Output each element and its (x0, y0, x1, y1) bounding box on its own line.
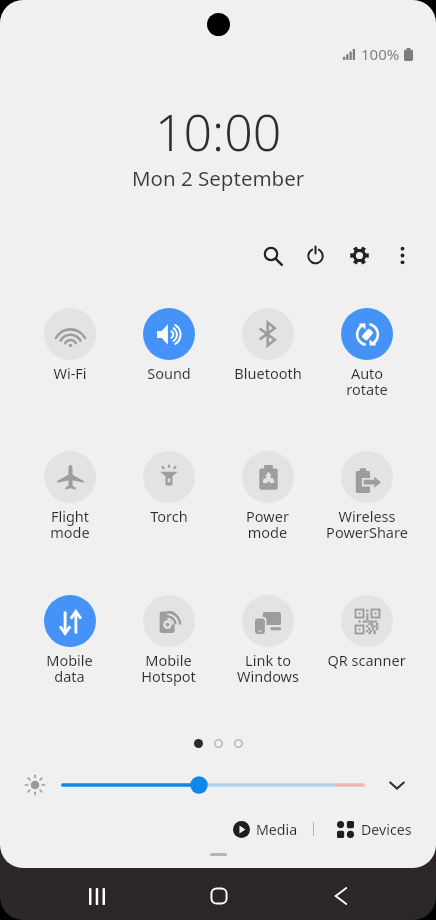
staticText: 100% (361, 44, 400, 64)
staticText: Wireless PowerShare (326, 506, 408, 543)
button[interactable]: Settings (337, 233, 382, 278)
button[interactable]: Wi-Fi (20, 308, 119, 383)
button[interactable]: Recents (75, 874, 119, 918)
staticText: Mobile Hotspot (141, 650, 196, 687)
staticText: Flight mode (50, 506, 90, 543)
button[interactable]: Auto rotate (317, 308, 416, 400)
staticText: Torch (150, 506, 188, 526)
button[interactable]: Torch (119, 451, 218, 526)
button[interactable]: QR scanner (317, 595, 416, 670)
staticText: Devices (361, 820, 412, 839)
button[interactable]: Power (293, 233, 338, 278)
button[interactable]: Expand brightness (381, 770, 413, 800)
staticText: Sound (147, 363, 191, 383)
button[interactable]: Power mode (218, 451, 317, 543)
button[interactable]: Sound (119, 308, 218, 383)
staticText: Wi-Fi (53, 363, 87, 383)
button[interactable]: Home (197, 874, 241, 918)
staticText: Power mode (246, 506, 289, 543)
button[interactable]: Wireless PowerShare (317, 451, 416, 543)
staticText: 10:00 (155, 98, 282, 162)
staticText: Media (256, 820, 298, 839)
staticText: Link to Windows (237, 650, 299, 687)
staticText: QR scanner (327, 650, 406, 670)
button[interactable]: Media (233, 816, 298, 842)
button[interactable]: Brightness (61, 774, 365, 796)
staticText: Mobile data (46, 650, 93, 687)
staticText: Bluetooth (234, 363, 302, 383)
button[interactable]: Link to Windows (218, 595, 317, 687)
button[interactable]: Devices (337, 816, 412, 842)
button[interactable]: Back (319, 874, 363, 918)
button[interactable]: Search (250, 233, 295, 278)
staticText: Mon 2 September (132, 164, 305, 192)
button[interactable]: Flight mode (20, 451, 119, 543)
button[interactable]: Mobile Hotspot (119, 595, 218, 687)
button[interactable]: Mobile data (20, 595, 119, 687)
staticText: Auto rotate (346, 363, 388, 400)
button[interactable]: Bluetooth (218, 308, 317, 383)
button[interactable]: More options (380, 233, 425, 278)
